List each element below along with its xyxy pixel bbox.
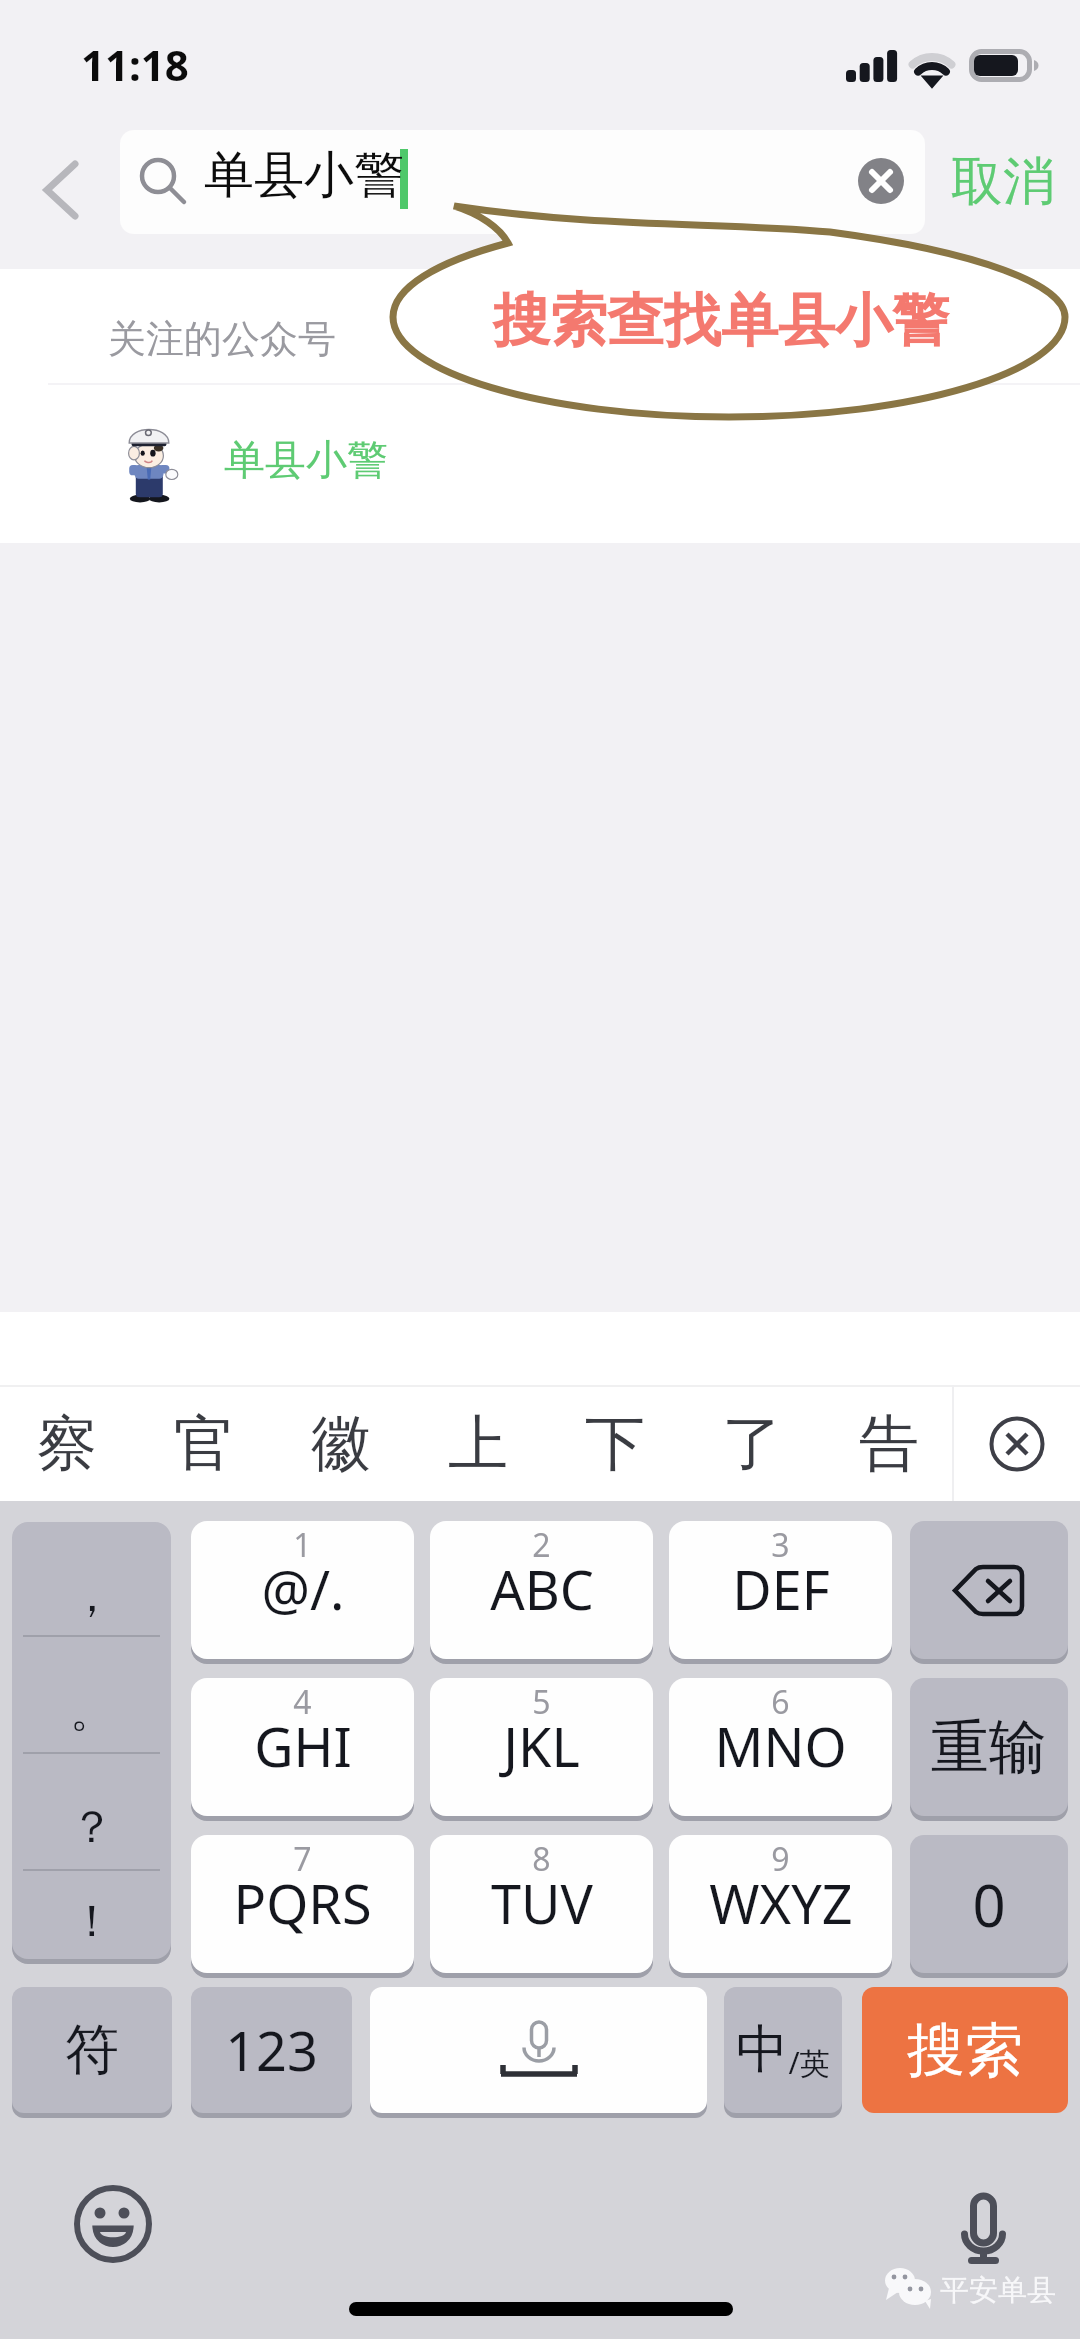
staticText: 123	[225, 2013, 318, 2087]
button[interactable]: Back	[18, 140, 108, 240]
staticText: TUV	[491, 1866, 593, 1940]
button[interactable]: 下	[553, 1387, 677, 1501]
button[interactable]: 取消	[938, 132, 1068, 232]
staticText: ABC	[490, 1552, 594, 1626]
button[interactable]: 单县小警	[0, 384, 1080, 543]
staticText: 0	[972, 1865, 1006, 1944]
staticText: ！	[70, 1894, 114, 1949]
staticText: 搜索查找单县小警	[493, 285, 949, 357]
staticText: WXYZ	[709, 1866, 853, 1940]
staticText: 下	[585, 1406, 645, 1482]
staticText: 告	[859, 1406, 919, 1482]
staticText: GHI	[254, 1709, 352, 1783]
staticText: ？	[70, 1800, 114, 1855]
button[interactable]: 6	[669, 1678, 892, 1816]
staticText: 符	[65, 2016, 119, 2084]
staticText: 单县小警	[224, 435, 388, 487]
button[interactable]: 符	[12, 1987, 172, 2113]
staticText: 2	[532, 1523, 551, 1567]
staticText: DEF	[732, 1552, 830, 1626]
staticText: 11:18	[81, 36, 189, 93]
button[interactable]: 单县小警	[120, 130, 925, 234]
staticText: 上	[448, 1406, 508, 1482]
button[interactable]: 3	[669, 1521, 892, 1659]
staticText: 4	[293, 1680, 312, 1724]
staticText: 重输	[931, 1711, 1047, 1784]
staticText: 1	[293, 1523, 312, 1567]
staticText: 。	[70, 1684, 114, 1739]
staticText: 6	[771, 1680, 790, 1724]
staticText: 平安单县	[940, 2272, 1056, 2309]
button[interactable]: 搜索	[862, 1987, 1068, 2113]
button[interactable]: 123	[191, 1987, 352, 2113]
button[interactable]: Voice input	[937, 2183, 1029, 2275]
button[interactable]: 7	[191, 1835, 414, 1973]
staticText: @/.	[261, 1552, 345, 1626]
button[interactable]: Clear text	[831, 131, 925, 231]
staticText: 单县小警	[204, 144, 404, 207]
button[interactable]: 重输	[910, 1678, 1068, 1816]
staticText: ，	[70, 1569, 114, 1624]
button[interactable]	[370, 1987, 707, 2113]
button[interactable]: 5	[430, 1678, 653, 1816]
staticText: 9	[771, 1837, 790, 1881]
staticText: 3	[771, 1523, 790, 1567]
staticText: 关注的公众号	[108, 315, 336, 363]
staticText: 8	[532, 1837, 551, 1881]
button[interactable]: 8	[430, 1835, 653, 1973]
button[interactable]: 官	[142, 1387, 266, 1501]
staticText: 7	[293, 1837, 312, 1881]
button[interactable]: 中	[724, 1987, 842, 2113]
button[interactable]: 1	[191, 1521, 414, 1659]
button[interactable]: 0	[910, 1835, 1068, 1973]
staticText: 察	[37, 1406, 97, 1482]
staticText: 徽	[311, 1406, 371, 1482]
staticText: 搜索	[907, 2014, 1023, 2087]
button[interactable]	[910, 1521, 1068, 1659]
button[interactable]: ，	[12, 1522, 171, 1959]
staticText: MNO	[714, 1709, 847, 1783]
staticText: PQRS	[233, 1866, 372, 1940]
button[interactable]: Emoji	[63, 2174, 163, 2274]
button[interactable]: 2	[430, 1521, 653, 1659]
staticText: /英	[788, 2042, 830, 2083]
staticText: 中	[736, 2017, 788, 2083]
staticText: 了	[722, 1406, 782, 1482]
staticText: 5	[532, 1680, 551, 1724]
button[interactable]: 了	[690, 1387, 814, 1501]
staticText: 取消	[951, 149, 1055, 215]
button[interactable]: 告	[827, 1387, 951, 1501]
button[interactable]: 徽	[279, 1387, 403, 1501]
button[interactable]: 察	[5, 1387, 129, 1501]
button[interactable]: 上	[416, 1387, 540, 1501]
button[interactable]: 4	[191, 1678, 414, 1816]
button[interactable]: Hide keyboard	[954, 1387, 1080, 1501]
staticText: JKL	[503, 1709, 580, 1783]
staticText: 官	[174, 1406, 234, 1482]
button[interactable]: 9	[669, 1835, 892, 1973]
